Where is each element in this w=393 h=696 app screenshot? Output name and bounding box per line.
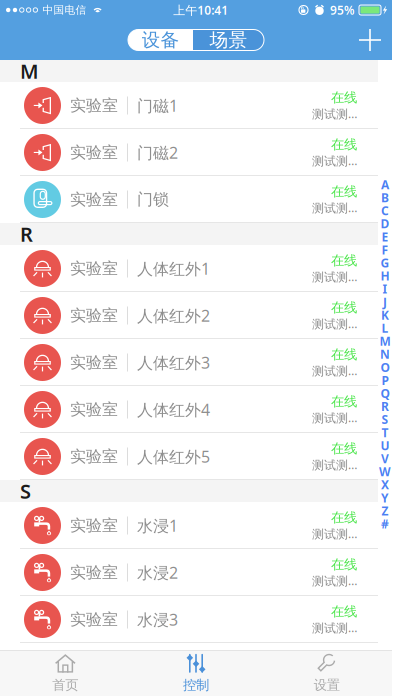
button[interactable]: 首页 (0, 650, 131, 696)
button[interactable]: 设备 (128, 29, 193, 50)
staticText: G (380, 255, 389, 271)
staticText: 在线 (331, 509, 357, 526)
staticText: E (381, 229, 388, 245)
staticText: D (380, 216, 389, 232)
staticText: C (381, 203, 389, 219)
staticText: 实验室 (70, 447, 118, 466)
staticText: I (382, 281, 387, 297)
staticText: P (381, 372, 388, 388)
button[interactable]: 实验室 (0, 292, 378, 339)
button[interactable]: 实验室 (0, 129, 378, 176)
staticText: N (380, 346, 390, 362)
staticText: 人体红外2 (137, 305, 210, 326)
staticText: 控制 (183, 677, 209, 693)
staticText: 测试测… (312, 153, 357, 169)
staticText: 门锁 (137, 190, 169, 209)
staticText: S (381, 411, 388, 427)
button[interactable]: 实验室 (0, 176, 378, 223)
staticText: 测试测… (312, 363, 357, 379)
staticText: 在线 (331, 603, 357, 620)
staticText: 测试测… (312, 410, 357, 426)
staticText: 设备 (141, 28, 179, 51)
staticText: F (381, 242, 388, 258)
staticText: V (381, 451, 389, 466)
staticText: # (381, 516, 389, 532)
staticText: 实验室 (70, 143, 118, 162)
button[interactable]: 实验室 (0, 245, 378, 292)
staticText: 实验室 (70, 563, 118, 582)
staticText: 门磁2 (137, 142, 178, 163)
staticText: 水浸2 (137, 562, 178, 583)
staticText: Y (381, 490, 389, 506)
staticText: 设置 (314, 677, 340, 693)
staticText: 在线 (331, 89, 357, 106)
staticText: 测试测… (312, 457, 357, 473)
staticText: 人体红外1 (137, 258, 210, 279)
staticText: 在线 (331, 136, 357, 153)
staticText: 人体红外5 (137, 446, 210, 467)
staticText: L (381, 320, 388, 336)
staticText: 中国电信 (43, 3, 87, 16)
staticText: A (381, 177, 389, 192)
staticText: 人体红外3 (137, 352, 210, 373)
staticText: X (381, 477, 389, 493)
staticText: 实验室 (70, 610, 118, 629)
staticText: M (379, 333, 390, 349)
button[interactable]: 实验室 (0, 549, 378, 596)
staticText: 在线 (331, 556, 357, 573)
staticText: 在线 (331, 393, 357, 410)
button[interactable]: 实验室 (0, 502, 378, 549)
staticText: 测试测… (312, 573, 357, 589)
staticText: U (380, 438, 389, 453)
staticText: 在线 (331, 346, 357, 363)
button[interactable]: 设置 (261, 650, 392, 696)
staticText: 测试测… (312, 106, 357, 122)
staticText: 在线 (331, 183, 357, 200)
button[interactable]: 实验室 (0, 386, 378, 433)
button[interactable]: 实验室 (0, 339, 378, 386)
staticText: 测试测… (312, 200, 357, 216)
staticText: 实验室 (70, 400, 118, 419)
staticText: Z (381, 503, 388, 519)
button[interactable]: 场景 (193, 29, 264, 50)
staticText: 首页 (52, 677, 78, 693)
staticText: 实验室 (70, 96, 118, 115)
staticText: 95% (330, 2, 355, 18)
staticText: 在线 (331, 299, 357, 316)
staticText: 测试测… (312, 526, 357, 542)
button[interactable]: Add (348, 20, 392, 60)
staticText: O (380, 359, 389, 375)
staticText: S (20, 478, 31, 504)
staticText: 在线 (331, 440, 357, 457)
staticText: 测试测… (312, 620, 357, 636)
staticText: 水浸3 (137, 609, 178, 630)
staticText: H (380, 268, 389, 284)
staticText: R (20, 221, 33, 247)
staticText: 测试测… (312, 269, 357, 285)
staticText: K (381, 307, 389, 323)
staticText: 场景 (209, 28, 247, 51)
staticText: B (381, 190, 389, 205)
staticText: 在线 (331, 252, 357, 269)
staticText: 人体红外4 (137, 399, 210, 420)
staticText: R (381, 398, 389, 414)
staticText: 水浸1 (137, 515, 178, 536)
staticText: 实验室 (70, 259, 118, 278)
staticText: W (379, 464, 391, 480)
button[interactable]: 实验室 (0, 82, 378, 129)
staticText: 实验室 (70, 516, 118, 535)
button[interactable]: 实验室 (0, 596, 378, 643)
staticText: J (383, 294, 387, 310)
button[interactable]: 控制 (131, 650, 261, 696)
staticText: 门磁1 (137, 95, 178, 116)
staticText: 实验室 (70, 306, 118, 325)
staticText: 实验室 (70, 353, 118, 372)
staticText: 上午10:41 (173, 2, 228, 18)
staticText: 实验室 (70, 190, 118, 209)
staticText: T (381, 424, 388, 440)
staticText: M (20, 58, 39, 84)
staticText: Q (380, 385, 389, 401)
button[interactable]: 实验室 (0, 433, 378, 480)
staticText: 测试测… (312, 316, 357, 332)
